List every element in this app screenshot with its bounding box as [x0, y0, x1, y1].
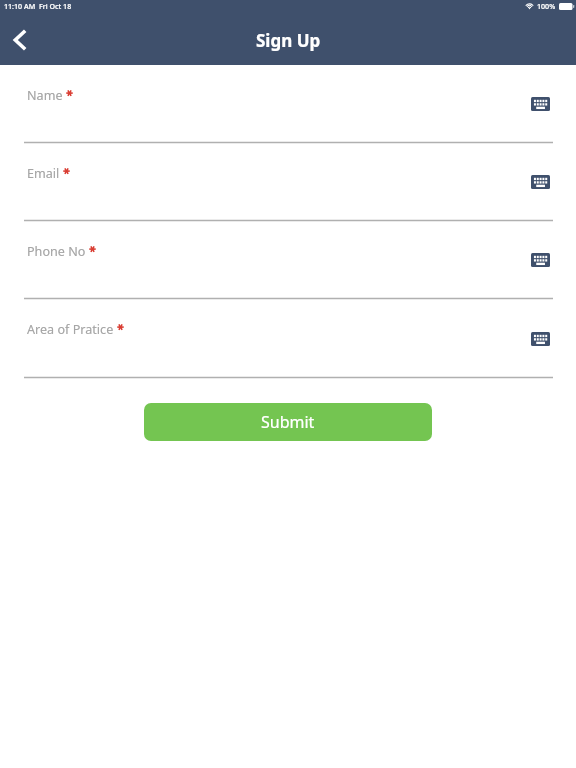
staticText: Phone No	[27, 243, 86, 260]
staticText: Sign Up	[256, 29, 321, 52]
button[interactable]: Submit	[144, 403, 432, 441]
staticText: 100%	[537, 1, 556, 11]
button[interactable]: Phone No	[0, 221, 576, 299]
button[interactable]: Name	[0, 65, 576, 143]
button[interactable]: Show keyboard	[526, 90, 554, 118]
staticText: Email	[27, 165, 60, 182]
button[interactable]: Area of Pratice	[0, 299, 576, 378]
staticText: 11:10 AM	[4, 1, 36, 11]
staticText: Name	[27, 87, 63, 104]
button[interactable]: Show keyboard	[526, 325, 554, 353]
button[interactable]: Show keyboard	[526, 168, 554, 196]
button[interactable]: Back	[1, 21, 39, 59]
button[interactable]: Show keyboard	[526, 246, 554, 274]
button[interactable]: Email	[0, 143, 576, 221]
staticText: Submit	[261, 411, 315, 433]
staticText: Area of Pratice	[27, 321, 114, 338]
staticText: Fri Oct 18	[39, 1, 72, 11]
